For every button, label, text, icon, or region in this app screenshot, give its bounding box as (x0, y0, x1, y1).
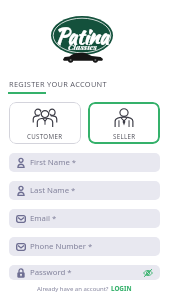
staticText: First Name * (30, 157, 77, 168)
button[interactable]: Phone Number * (9, 237, 160, 256)
staticText: LOGIN (111, 284, 132, 293)
button[interactable]: CUSTOMER (9, 102, 81, 144)
staticText: Classics (68, 41, 97, 52)
staticText: Phone Number * (30, 241, 93, 252)
staticText: Email * (30, 213, 57, 224)
button[interactable]: First Name * (9, 153, 160, 172)
button[interactable]: Show password (143, 268, 153, 278)
button[interactable]: Password * (9, 265, 160, 280)
staticText: Patina (55, 22, 109, 51)
button[interactable]: SELLER (88, 102, 160, 144)
staticText: Already have an account? (37, 285, 111, 293)
button[interactable]: LOGIN (111, 284, 132, 293)
staticText: CUSTOMER (27, 132, 63, 140)
button[interactable]: Last Name * (9, 181, 160, 200)
staticText: SELLER (113, 132, 136, 140)
staticText: REGISTER YOUR ACCOUNT (9, 79, 107, 89)
button[interactable]: Email * (9, 209, 160, 228)
staticText: Password * (30, 267, 72, 278)
staticText: Last Name * (30, 185, 76, 196)
